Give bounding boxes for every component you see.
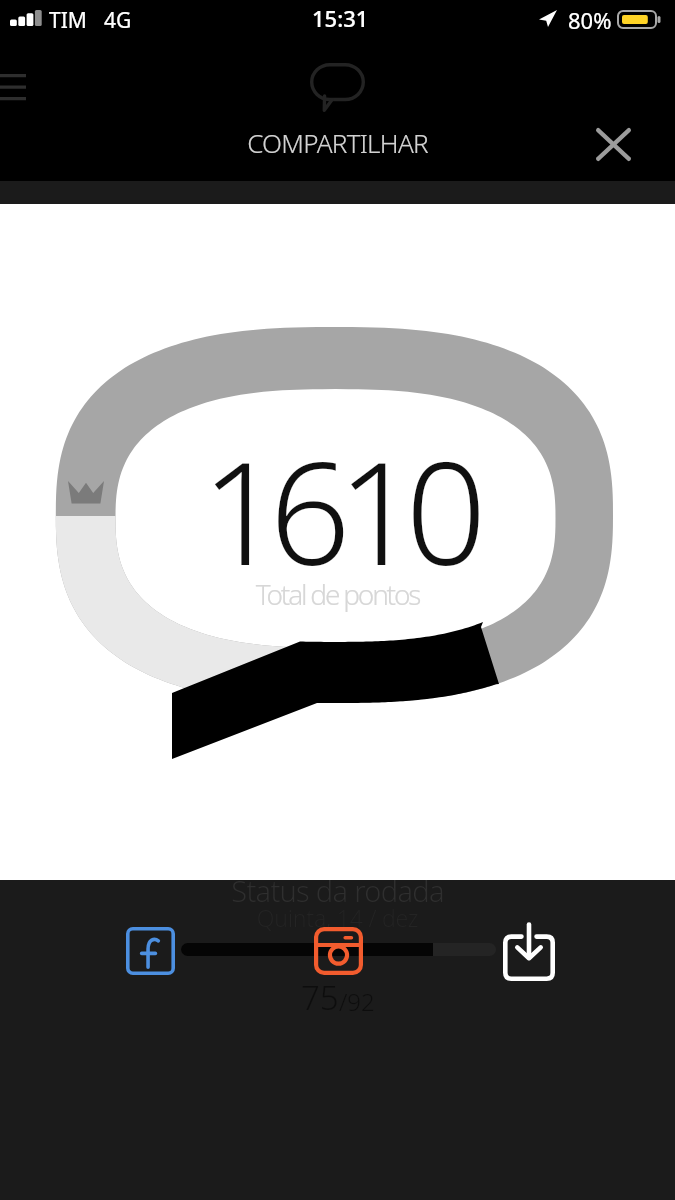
staticText: 80% xyxy=(568,5,612,35)
staticText: Total de pontos xyxy=(0,575,675,613)
button[interactable]: Download xyxy=(503,921,555,981)
button[interactable]: Close xyxy=(583,114,643,174)
staticText: Status da rodada xyxy=(0,871,675,910)
staticText: 4G xyxy=(104,6,132,35)
staticText: COMPARTILHAR xyxy=(0,125,675,160)
staticText: Quinta, 14 / dez xyxy=(0,902,675,933)
staticText: 1610 xyxy=(0,413,675,606)
staticText: /92 xyxy=(339,985,375,1018)
staticText: 75 xyxy=(301,975,339,1020)
button[interactable]: Share on Facebook xyxy=(126,927,175,975)
button[interactable]: Share on Instagram xyxy=(314,927,363,975)
button[interactable]: Menu xyxy=(0,66,30,114)
staticText: TIM xyxy=(49,6,87,35)
staticText: 15:31 xyxy=(312,3,369,33)
